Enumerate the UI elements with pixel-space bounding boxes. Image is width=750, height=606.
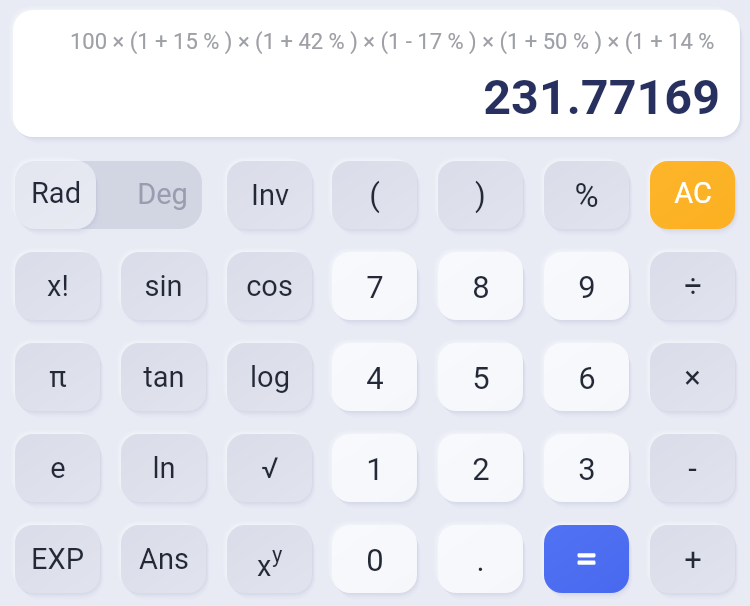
staticText: % (574, 176, 599, 215)
staticText: . (476, 542, 485, 578)
staticText: Rad (31, 176, 81, 210)
button[interactable]: Ans (121, 525, 206, 593)
staticText: - (688, 450, 697, 486)
button[interactable]: 9 (544, 252, 629, 320)
staticText: tan (143, 360, 185, 394)
button[interactable]: EXP (15, 525, 100, 593)
button[interactable]: Inv (227, 161, 312, 229)
staticText: 0 (366, 542, 384, 578)
staticText: 6 (578, 360, 596, 396)
staticText: Deg (137, 177, 188, 211)
button[interactable]: % (544, 161, 629, 229)
button[interactable]: 0 (332, 525, 417, 593)
staticText: ) (475, 177, 486, 213)
staticText: cos (246, 269, 293, 303)
button[interactable]: sin (121, 252, 206, 320)
staticText: log (250, 360, 290, 394)
button[interactable]: √ (227, 434, 312, 502)
button[interactable]: 8 (438, 252, 523, 320)
staticText: ( (369, 177, 380, 213)
staticText: sin (144, 269, 183, 303)
button[interactable]: 2 (438, 434, 523, 502)
button[interactable]: - (650, 434, 735, 502)
staticText: ÷ (684, 268, 702, 304)
staticText: 9 (578, 269, 596, 305)
button[interactable]: e (15, 434, 100, 502)
staticText: 231.77169 (13, 69, 720, 126)
button[interactable]: AC (650, 161, 735, 229)
button[interactable]: ( (332, 161, 417, 229)
staticText: π (49, 360, 67, 394)
button[interactable]: Equals (544, 525, 629, 593)
button[interactable]: . (438, 525, 523, 593)
staticText: y (272, 542, 283, 568)
button[interactable]: 3 (544, 434, 629, 502)
staticText: AC (674, 176, 712, 210)
button[interactable]: × (650, 343, 735, 411)
button[interactable]: tan (121, 343, 206, 411)
staticText: 1 (366, 451, 384, 487)
button[interactable]: x! (15, 252, 100, 320)
staticText: 7 (366, 269, 384, 305)
staticText: 3 (578, 451, 596, 487)
staticText: e (50, 451, 66, 485)
button[interactable]: cos (227, 252, 312, 320)
button[interactable]: 1 (332, 434, 417, 502)
button[interactable]: ) (438, 161, 523, 229)
button[interactable]: x (227, 525, 312, 593)
staticText: √ (261, 451, 279, 485)
button[interactable]: 7 (332, 252, 417, 320)
staticText: × (684, 359, 701, 395)
staticText: 8 (472, 269, 490, 305)
staticText: 2 (472, 451, 490, 487)
button[interactable]: log (227, 343, 312, 411)
button[interactable]: Rad (15, 161, 96, 229)
staticText: x! (47, 269, 69, 303)
staticText: x (257, 549, 272, 583)
button[interactable]: Deg (96, 161, 202, 229)
button[interactable]: 4 (332, 343, 417, 411)
staticText: ln (152, 451, 176, 485)
staticText: Inv (251, 178, 289, 212)
button[interactable]: ÷ (650, 252, 735, 320)
button[interactable]: + (650, 525, 735, 593)
staticText: EXP (31, 542, 84, 576)
staticText: 100 × (1 + 15 % ) × (1 + 42 % ) × (1 - 1… (70, 29, 715, 55)
staticText: 5 (472, 360, 490, 396)
button[interactable]: 6 (544, 343, 629, 411)
staticText: 4 (366, 360, 384, 396)
button[interactable]: π (15, 343, 100, 411)
staticText: + (684, 541, 702, 577)
staticText: Ans (139, 542, 189, 576)
button[interactable]: 5 (438, 343, 523, 411)
button[interactable]: ln (121, 434, 206, 502)
